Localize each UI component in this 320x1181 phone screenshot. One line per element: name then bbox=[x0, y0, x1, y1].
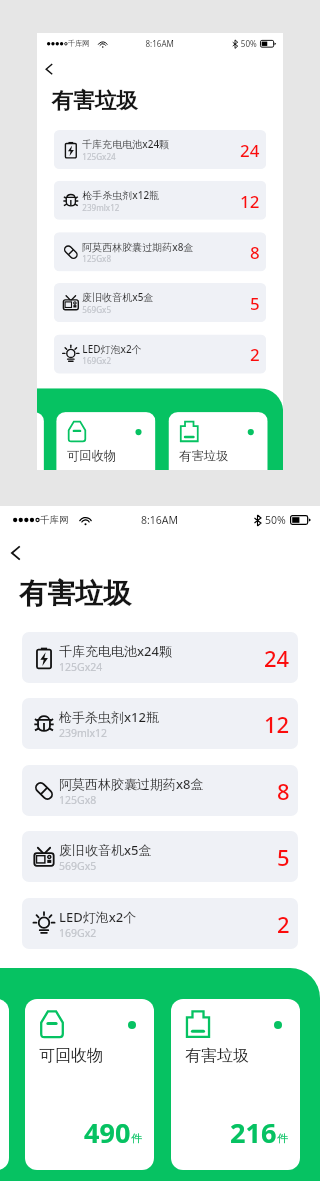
staticText: 8 bbox=[277, 776, 290, 806]
staticText: 2 bbox=[277, 909, 290, 939]
staticText: 件 bbox=[277, 1131, 288, 1145]
staticText: 阿莫西林胶囊过期药x8盒 bbox=[82, 240, 194, 254]
staticText: 12 bbox=[264, 709, 290, 739]
button[interactable]: 枪手杀虫剂x12瓶 bbox=[22, 698, 298, 749]
staticText: 216 bbox=[230, 1114, 277, 1151]
button[interactable]: 阿莫西林胶囊过期药x8盒 bbox=[54, 232, 266, 271]
staticText: 有害垃圾 bbox=[19, 576, 131, 611]
staticText: 废旧收音机x5盒 bbox=[59, 841, 152, 859]
button[interactable]: 有害垃圾 bbox=[168, 412, 268, 470]
staticText: 5 bbox=[277, 842, 290, 872]
staticText: 千库网 bbox=[40, 514, 69, 526]
button[interactable]: 可回收物 bbox=[56, 412, 155, 470]
staticText: 千库充电电池x24颗 bbox=[82, 138, 169, 151]
button[interactable]: 千库充电电池x24颗 bbox=[54, 130, 266, 169]
staticText: 125Gx8 bbox=[59, 793, 97, 807]
staticText: 24 bbox=[240, 138, 260, 161]
staticText: 废旧收音机x5盒 bbox=[82, 291, 154, 304]
staticText: 件 bbox=[131, 1131, 142, 1145]
staticText: 569Gx5 bbox=[82, 304, 112, 315]
staticText: 有害垃圾 bbox=[185, 1046, 249, 1066]
staticText: 12 bbox=[240, 189, 260, 212]
staticText: 8 bbox=[250, 241, 260, 264]
button[interactable]: 塑料瓶 bbox=[0, 999, 9, 1170]
staticText: 有害垃圾 bbox=[52, 87, 138, 114]
button[interactable]: 废旧收音机x5盒 bbox=[22, 831, 298, 882]
button[interactable]: 废旧收音机x5盒 bbox=[54, 283, 266, 322]
staticText: 2 bbox=[250, 343, 260, 366]
staticText: 5 bbox=[250, 291, 260, 314]
staticText: 可回收物 bbox=[39, 1046, 103, 1066]
button[interactable]: Back bbox=[38, 58, 59, 80]
staticText: 169Gx2 bbox=[59, 926, 97, 940]
staticText: 枪手杀虫剂x12瓶 bbox=[59, 708, 159, 726]
button[interactable]: Back bbox=[1, 539, 29, 567]
button[interactable]: 阿莫西林胶囊过期药x8盒 bbox=[22, 765, 298, 816]
button[interactable]: LED灯泡x2个 bbox=[54, 334, 266, 374]
staticText: 239mlx12 bbox=[82, 202, 120, 213]
staticText: 8:16AM bbox=[141, 513, 179, 527]
staticText: LED灯泡x2个 bbox=[82, 342, 142, 356]
staticText: 125Gx24 bbox=[59, 660, 103, 674]
button[interactable]: 塑料瓶 bbox=[37, 412, 44, 470]
button[interactable]: LED灯泡x2个 bbox=[22, 898, 298, 949]
staticText: 490 bbox=[84, 1114, 131, 1151]
staticText: 169Gx2 bbox=[82, 356, 112, 367]
staticText: 24 bbox=[264, 643, 290, 673]
staticText: 千库网 bbox=[68, 39, 90, 48]
staticText: 枪手杀虫剂x12瓶 bbox=[82, 188, 159, 202]
staticText: 有害垃圾 bbox=[179, 448, 228, 464]
button[interactable]: 可回收物 bbox=[25, 999, 154, 1170]
staticText: 可回收物 bbox=[67, 448, 116, 464]
staticText: 125Gx8 bbox=[82, 254, 112, 264]
staticText: LED灯泡x2个 bbox=[59, 908, 137, 926]
button[interactable]: 千库充电电池x24颗 bbox=[22, 632, 298, 683]
staticText: 50% bbox=[241, 38, 257, 49]
staticText: 阿莫西林胶囊过期药x8盒 bbox=[59, 775, 204, 793]
staticText: 50% bbox=[265, 513, 286, 527]
button[interactable]: 枪手杀虫剂x12瓶 bbox=[54, 181, 266, 220]
staticText: 千库充电电池x24颗 bbox=[59, 642, 172, 660]
staticText: 125Gx24 bbox=[82, 151, 116, 162]
staticText: 239mlx12 bbox=[59, 726, 108, 740]
staticText: 8:16AM bbox=[145, 38, 175, 49]
staticText: 569Gx5 bbox=[59, 859, 97, 873]
button[interactable]: 有害垃圾 bbox=[171, 999, 300, 1170]
